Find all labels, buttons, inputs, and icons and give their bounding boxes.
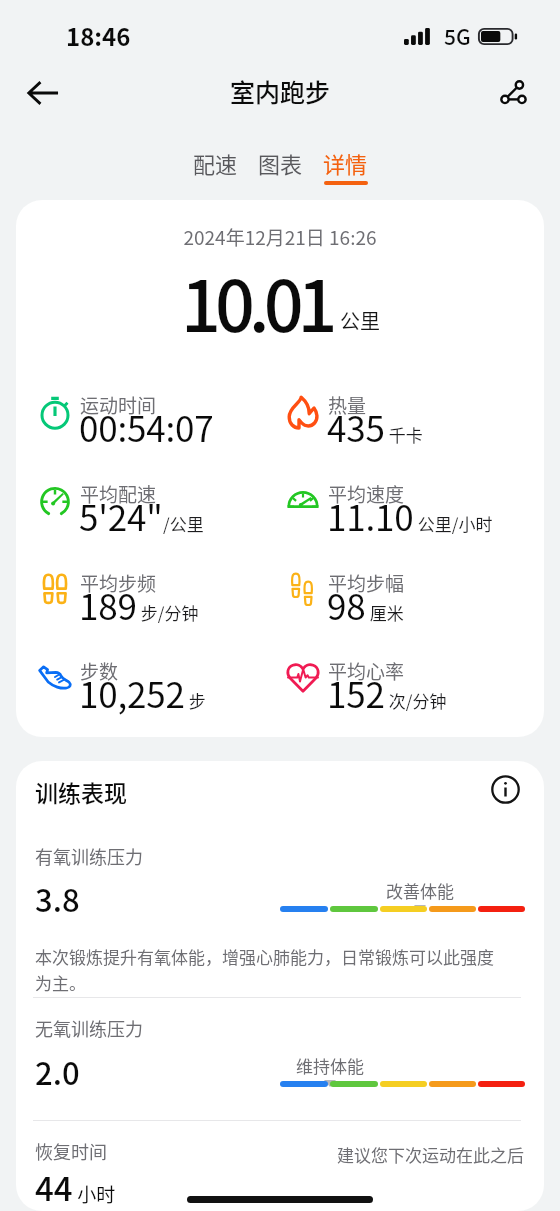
staticText: 运动时间: [80, 391, 157, 419]
staticText: /公里: [163, 511, 204, 536]
staticText: 10,252: [79, 667, 185, 718]
staticText: 本次锻炼提升有氧体能，增强心肺能力，日常锻炼可以此强度为主。: [35, 944, 497, 995]
staticText: 平均步频: [80, 569, 157, 597]
staticText: 平均配速: [80, 480, 157, 508]
staticText: 改善体能: [360, 878, 480, 903]
button[interactable]: 步数: [40, 649, 290, 707]
staticText: 次/分钟: [385, 688, 447, 713]
button[interactable]: Back: [14, 64, 72, 122]
button[interactable]: 平均步频: [40, 561, 290, 619]
staticText: 恢复时间: [35, 1138, 107, 1164]
staticText: 步数: [80, 657, 119, 685]
staticText: 维持体能: [270, 1053, 390, 1078]
staticText: 10.01: [181, 251, 332, 352]
staticText: 千卡: [385, 422, 423, 447]
staticText: 训练表现: [35, 775, 127, 808]
staticText: 有氧训练压力: [35, 843, 143, 869]
staticText: 步/分钟: [137, 600, 199, 625]
staticText: 无氧训练压力: [35, 1015, 143, 1041]
button[interactable]: 平均速度: [288, 472, 538, 530]
staticText: 小时: [73, 1180, 116, 1208]
staticText: 44: [35, 1163, 73, 1211]
staticText: 平均步幅: [328, 569, 405, 597]
staticText: 98: [327, 579, 366, 630]
staticText: 2.0: [35, 1049, 80, 1094]
staticText: 室内跑步: [230, 73, 331, 109]
staticText: 00:54:07: [79, 401, 214, 452]
button[interactable]: 热量: [288, 383, 538, 441]
button[interactable]: 运动时间: [40, 383, 290, 441]
staticText: 平均心率: [328, 657, 405, 685]
staticText: 435: [327, 401, 385, 452]
staticText: 公里: [340, 306, 380, 335]
staticText: 3.8: [35, 876, 80, 921]
button[interactable]: 详情: [323, 147, 368, 185]
staticText: 建议您下次运动在此之后: [276, 1142, 524, 1167]
button[interactable]: 配速: [193, 147, 238, 185]
staticText: 热量: [328, 391, 367, 419]
staticText: 18:46: [66, 18, 131, 53]
staticText: 2024年12月21日 16:26: [16, 223, 544, 251]
staticText: 5'24": [79, 490, 163, 541]
button[interactable]: 平均配速: [40, 472, 290, 530]
staticText: 详情: [323, 147, 368, 179]
button[interactable]: 平均步幅: [288, 561, 538, 619]
staticText: 平均速度: [328, 480, 405, 508]
button[interactable]: 图表: [258, 147, 303, 185]
staticText: 步: [185, 688, 206, 713]
staticText: 189: [79, 579, 137, 630]
staticText: 厘米: [366, 600, 404, 625]
button[interactable]: Info: [484, 768, 526, 810]
staticText: 11.10: [327, 490, 414, 541]
button[interactable]: Share: [484, 64, 542, 122]
staticText: 配速: [193, 147, 238, 179]
staticText: 5G: [444, 21, 471, 51]
staticText: 152: [327, 667, 385, 718]
staticText: 图表: [258, 147, 303, 179]
staticText: 公里/小时: [414, 511, 493, 536]
button[interactable]: 平均心率: [288, 649, 538, 707]
